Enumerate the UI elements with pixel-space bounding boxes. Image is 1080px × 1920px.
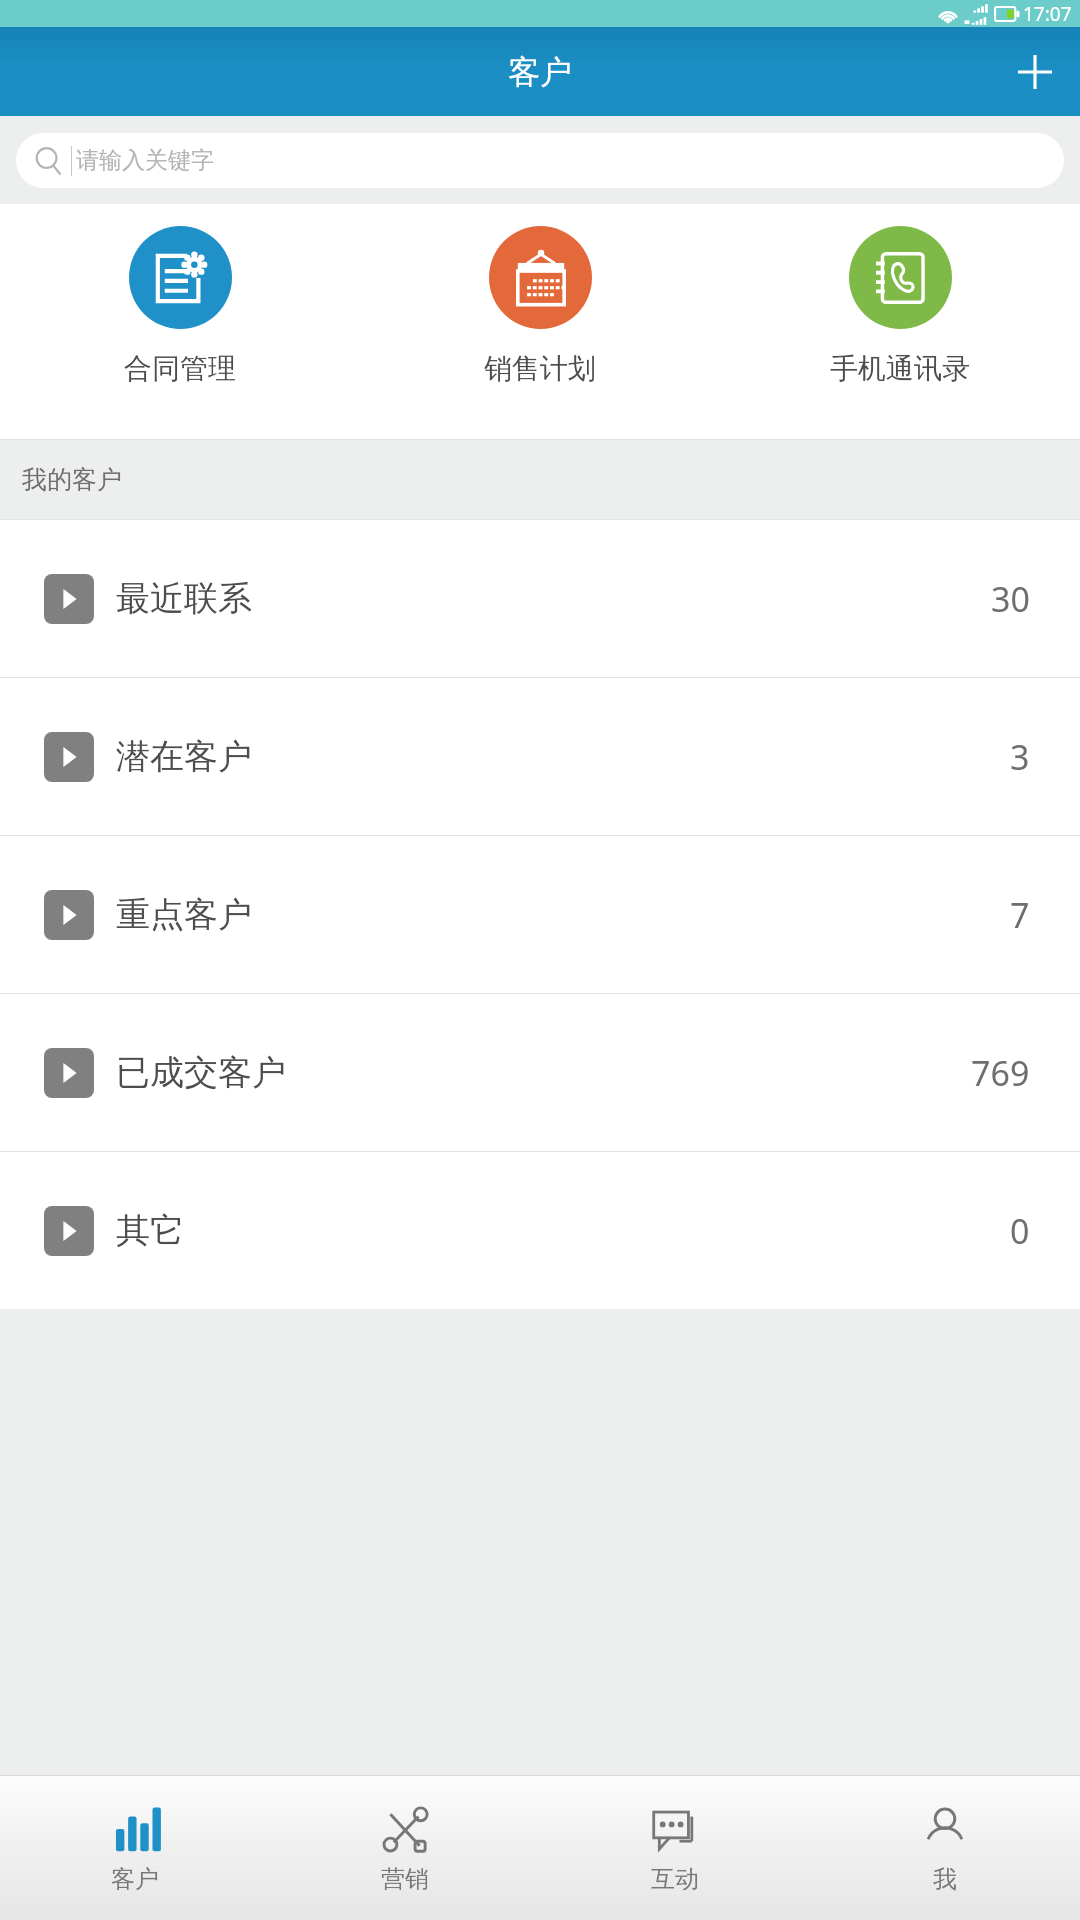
staticText: 合同管理 (124, 351, 236, 386)
staticText: 互动 (651, 1864, 699, 1894)
staticText: 手机通讯录 (830, 351, 970, 386)
staticText: 769 (971, 1050, 1030, 1096)
button[interactable]: 销售计划 (360, 204, 720, 439)
button[interactable]: 互动 (540, 1776, 810, 1920)
button[interactable]: 客户 (0, 1776, 270, 1920)
staticText: 其它 (116, 1209, 184, 1252)
staticText: 3 (1010, 734, 1030, 780)
staticText: 请输入关键字 (76, 146, 214, 175)
button[interactable]: 合同管理 (0, 204, 360, 439)
staticText: 销售计划 (484, 351, 596, 386)
button[interactable]: 手机通讯录 (720, 204, 1080, 439)
staticText: 客户 (111, 1864, 159, 1894)
staticText: 我的客户 (22, 464, 122, 495)
button[interactable]: 潜在客户 (0, 678, 1080, 835)
staticText: 30 (991, 576, 1030, 622)
button[interactable]: 已成交客户 (0, 994, 1080, 1151)
button[interactable]: 重点客户 (0, 836, 1080, 993)
button[interactable]: Add customer (990, 27, 1080, 116)
staticText: 我 (933, 1864, 957, 1894)
button[interactable]: 请输入关键字 (16, 133, 1064, 188)
staticText: 7 (1010, 892, 1030, 938)
staticText: 客户 (508, 52, 572, 92)
button[interactable]: 其它 (0, 1152, 1080, 1309)
staticText: 营销 (381, 1864, 429, 1894)
staticText: 17:07 (1023, 1, 1072, 27)
button[interactable]: 最近联系 (0, 520, 1080, 677)
button[interactable]: 我 (810, 1776, 1080, 1920)
staticText: 潜在客户 (116, 735, 252, 778)
staticText: 已成交客户 (116, 1051, 286, 1094)
staticText: 最近联系 (116, 577, 252, 620)
staticText: 重点客户 (116, 893, 252, 936)
button[interactable]: 营销 (270, 1776, 540, 1920)
staticText: 0 (1010, 1208, 1030, 1254)
